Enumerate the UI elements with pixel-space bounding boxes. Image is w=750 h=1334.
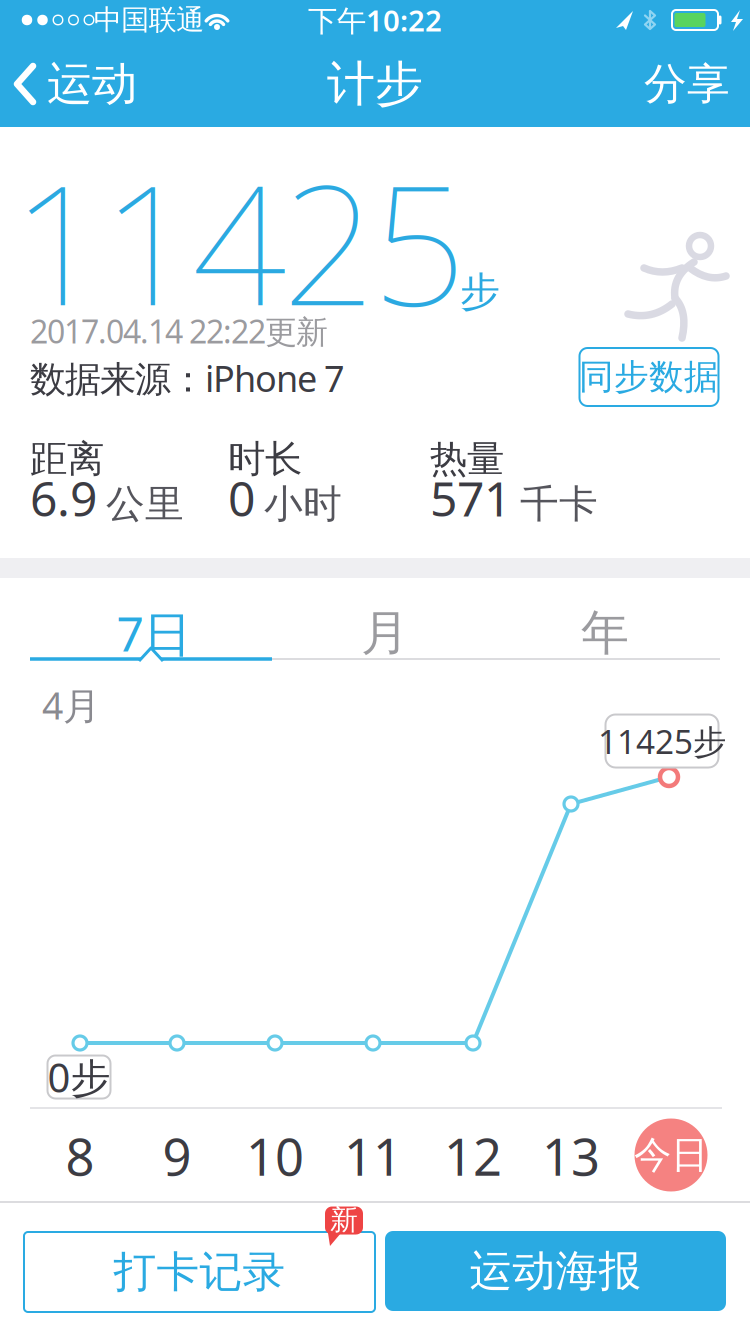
button[interactable]: 分享 bbox=[628, 41, 746, 127]
button[interactable]: 运动 bbox=[0, 41, 147, 127]
staticText: 运动 bbox=[47, 56, 137, 112]
staticText: 4月 bbox=[42, 680, 100, 730]
staticText: 新 bbox=[330, 1203, 358, 1237]
staticText: 数据来源：iPhone 7 bbox=[30, 354, 345, 402]
staticText: 千卡 bbox=[520, 480, 598, 528]
button[interactable]: 打卡记录 bbox=[24, 1232, 375, 1312]
staticText: 中国联通 bbox=[94, 3, 204, 37]
staticText: 计步 bbox=[327, 54, 423, 113]
button[interactable]: 今日 bbox=[634, 1118, 708, 1191]
button[interactable]: 年 bbox=[495, 595, 715, 671]
staticText: 571 bbox=[430, 466, 511, 530]
staticText: 2017.04.14 22:22更新 bbox=[30, 310, 328, 352]
staticText: 0步 bbox=[47, 1050, 110, 1103]
staticText: 11 bbox=[344, 1122, 402, 1190]
staticText: 公里 bbox=[106, 480, 184, 528]
staticText: 今日 bbox=[634, 1132, 708, 1178]
staticText: 运动海报 bbox=[469, 1245, 641, 1297]
staticText: 距离 bbox=[30, 436, 104, 482]
staticText: 11425步 bbox=[598, 719, 726, 763]
staticText: 11425 bbox=[12, 131, 466, 351]
staticText: 7日 bbox=[116, 601, 191, 665]
staticText: 6.9 bbox=[30, 466, 97, 530]
staticText: 分享 bbox=[644, 58, 730, 110]
staticText: 8 bbox=[65, 1122, 94, 1190]
button[interactable]: 7日 bbox=[44, 595, 264, 671]
staticText: 12 bbox=[444, 1122, 502, 1190]
staticText: 同步数据 bbox=[579, 356, 719, 398]
staticText: 13 bbox=[542, 1122, 600, 1190]
staticText: 下午10:22 bbox=[308, 0, 442, 39]
button[interactable]: 同步数据 bbox=[579, 348, 719, 406]
staticText: 打卡记录 bbox=[113, 1246, 285, 1298]
staticText: 10 bbox=[246, 1122, 304, 1190]
button[interactable]: 月 bbox=[275, 595, 495, 671]
staticText: 步 bbox=[460, 267, 500, 316]
staticText: 0 bbox=[228, 466, 255, 530]
staticText: 年 bbox=[581, 603, 629, 662]
staticText: 小时 bbox=[264, 480, 342, 528]
staticText: 9 bbox=[162, 1122, 191, 1190]
staticText: 时长 bbox=[228, 436, 302, 482]
staticText: 月 bbox=[361, 603, 409, 662]
staticText: 热量 bbox=[430, 436, 504, 482]
button[interactable]: 运动海报 bbox=[385, 1231, 726, 1311]
